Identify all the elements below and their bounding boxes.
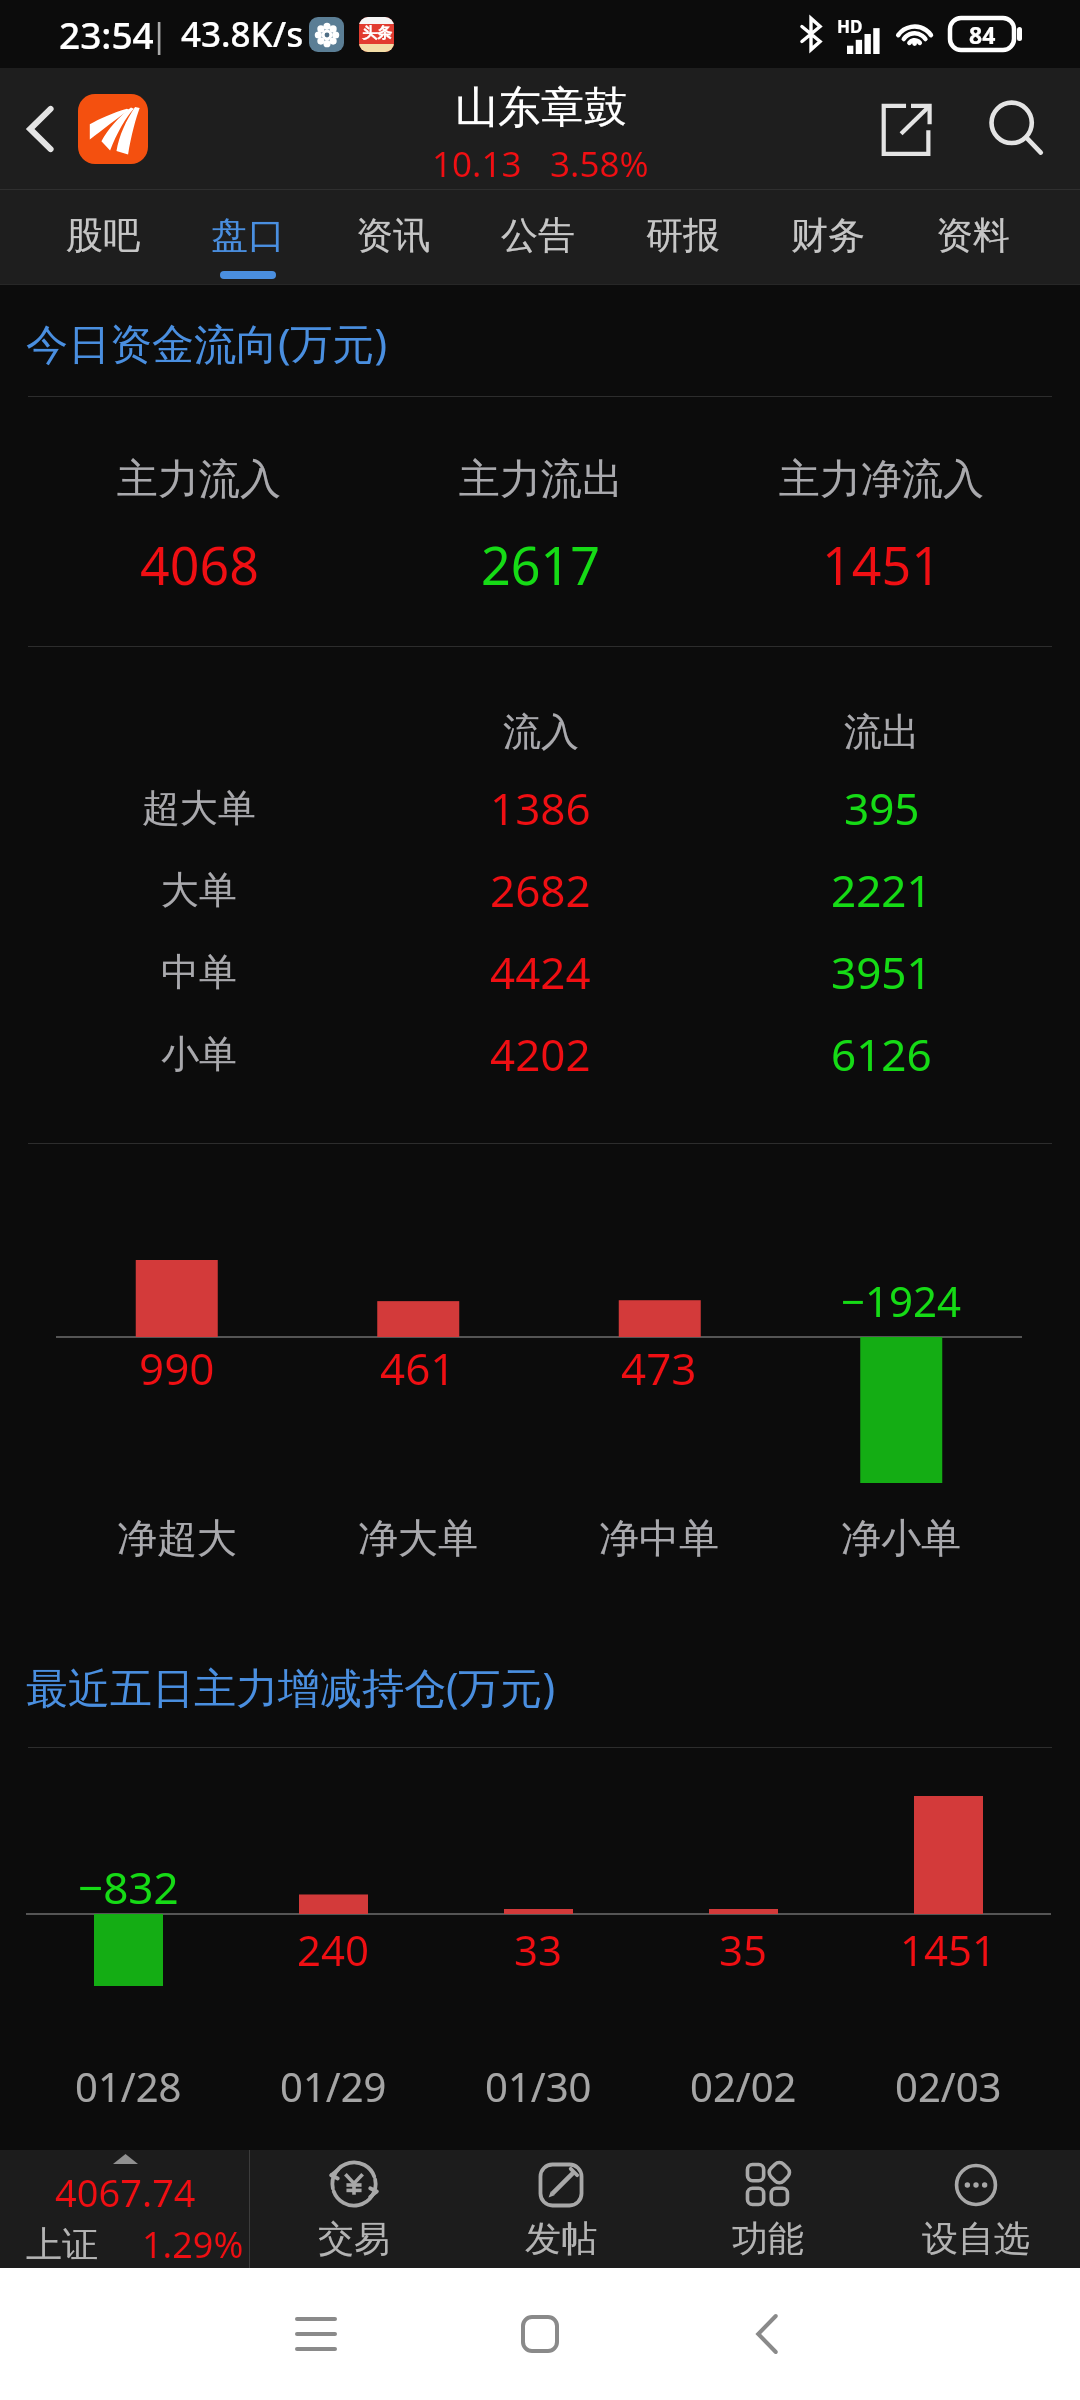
staticText: 02/03 <box>895 2059 1002 2113</box>
staticText: 10.13 <box>432 140 522 188</box>
staticText: 净小单 <box>841 1513 961 1563</box>
staticText: 4424 <box>490 942 591 1002</box>
staticText: 股吧 <box>66 212 140 259</box>
button[interactable]: 股吧 <box>31 190 175 285</box>
button[interactable]: Share <box>868 86 954 172</box>
staticText: 990 <box>139 1338 215 1398</box>
staticText: 资讯 <box>356 212 430 259</box>
staticText: 流入 <box>503 708 579 756</box>
staticText: 超大单 <box>142 784 256 832</box>
staticText: 功能 <box>732 2216 804 2261</box>
staticText: 小单 <box>161 1030 237 1078</box>
staticText: 盘口 <box>211 212 285 259</box>
staticText: 财务 <box>791 212 865 259</box>
staticText: −832 <box>78 1857 179 1917</box>
staticText: 1451 <box>900 1921 997 1978</box>
button[interactable]: Home <box>500 2294 580 2374</box>
staticText: 净超大 <box>117 1513 237 1563</box>
staticText: 主力净流入 <box>779 454 984 506</box>
button[interactable]: Back <box>727 2294 807 2374</box>
staticText: 交易 <box>318 2216 390 2261</box>
button[interactable]: 4067.74 <box>0 2150 249 2268</box>
button[interactable]: 发帖 <box>457 2150 664 2268</box>
staticText: 1451 <box>822 529 941 600</box>
staticText: 4068 <box>140 529 259 600</box>
button[interactable]: 公告 <box>465 190 610 285</box>
staticText: 资料 <box>936 212 1010 259</box>
staticText: 1.29% <box>142 2220 244 2268</box>
staticText: 最近五日主力增减持仓(万元) <box>26 1658 556 1715</box>
staticText: 3.58% <box>550 140 649 188</box>
staticText: 395 <box>844 778 920 838</box>
staticText: 4202 <box>490 1024 591 1084</box>
staticText: 今日资金流向(万元) <box>26 314 388 371</box>
button[interactable]: 资料 <box>900 190 1045 285</box>
staticText: | <box>150 12 177 57</box>
staticText: 1386 <box>490 778 591 838</box>
button[interactable]: 交易 <box>250 2150 457 2268</box>
staticText: 4067.74 <box>55 2166 196 2218</box>
staticText: 公告 <box>501 212 575 259</box>
staticText: 3951 <box>831 942 932 1002</box>
button[interactable]: 盘口 <box>175 190 320 285</box>
staticText: 净中单 <box>599 1513 719 1563</box>
staticText: −1924 <box>841 1272 962 1329</box>
staticText: 发帖 <box>525 2216 597 2261</box>
staticText: 33 <box>514 1921 563 1978</box>
staticText: 大单 <box>161 866 237 914</box>
button[interactable]: 研报 <box>610 190 755 285</box>
staticText: 设自选 <box>922 2216 1030 2261</box>
staticText: 240 <box>297 1921 370 1978</box>
button[interactable]: 财务 <box>755 190 900 285</box>
button[interactable]: Home logo <box>78 94 148 164</box>
staticText: 23:54 <box>59 9 154 59</box>
staticText: 01/30 <box>485 2059 592 2113</box>
button[interactable]: 资讯 <box>320 190 465 285</box>
staticText: 研报 <box>646 212 720 259</box>
button[interactable]: Search <box>974 87 1058 171</box>
staticText: 02/02 <box>690 2059 797 2113</box>
staticText: 461 <box>380 1338 456 1398</box>
staticText: 01/29 <box>280 2059 387 2113</box>
staticText: 43.8K/s <box>181 10 304 58</box>
staticText: 主力流入 <box>117 454 281 506</box>
staticText: 净大单 <box>358 1513 478 1563</box>
staticText: 2682 <box>490 860 591 920</box>
staticText: 上证 <box>26 2222 98 2267</box>
staticText: 山东章鼓 <box>455 81 627 135</box>
button[interactable]: 功能 <box>664 2150 872 2268</box>
staticText: 头条 <box>362 24 392 43</box>
button[interactable]: Back <box>10 98 72 160</box>
staticText: 2221 <box>831 860 932 920</box>
staticText: 473 <box>621 1338 697 1398</box>
staticText: 35 <box>719 1921 768 1978</box>
button[interactable]: Recent apps <box>276 2294 356 2374</box>
staticText: 2617 <box>481 529 600 600</box>
button[interactable]: 设自选 <box>872 2150 1080 2268</box>
staticText: HD <box>837 15 863 38</box>
staticText: 84 <box>969 19 996 50</box>
staticText: 01/28 <box>75 2059 182 2113</box>
staticText: 中单 <box>161 948 237 996</box>
staticText: 流出 <box>844 708 920 756</box>
staticText: 6126 <box>831 1024 932 1084</box>
staticText: 主力流出 <box>459 454 623 506</box>
